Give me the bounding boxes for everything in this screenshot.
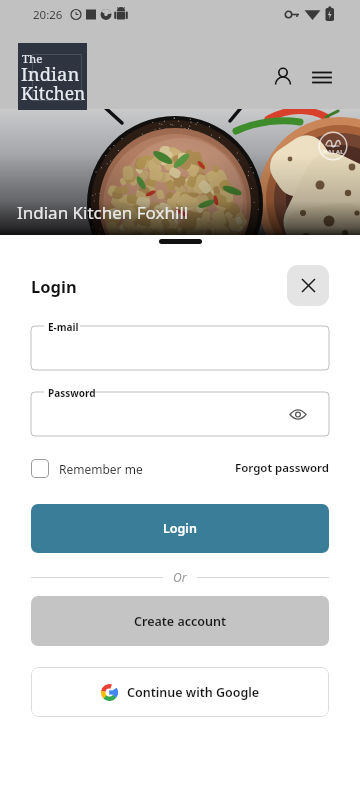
staticText: 20:26 [33, 7, 63, 23]
staticText: Remember me [59, 461, 143, 477]
button[interactable]: Show password [288, 404, 308, 424]
staticText: Login [163, 520, 197, 537]
button[interactable]: Continue with Google [31, 667, 329, 717]
staticText: The [22, 51, 43, 67]
button[interactable]: Menu [308, 63, 336, 91]
button[interactable]: Account [269, 63, 297, 91]
button[interactable]: Forgot password [196, 458, 329, 478]
button[interactable]: The Indian Kitchen logo [18, 43, 87, 110]
staticText: Login [31, 275, 77, 297]
staticText: E-mail [48, 320, 79, 334]
button[interactable]: Close [287, 265, 329, 306]
button[interactable]: Create account [31, 596, 329, 646]
staticText: Forgot password [235, 460, 329, 476]
staticText: Or [173, 569, 187, 585]
staticText: Password [48, 386, 96, 400]
button[interactable]: Remember me [31, 458, 143, 478]
button[interactable]: Login [31, 504, 329, 553]
staticText: HALAL [323, 148, 344, 155]
staticText: Continue with Google [127, 684, 260, 701]
staticText: Kitchen [21, 81, 86, 105]
staticText: Create account [134, 613, 227, 630]
staticText: Indian Kitchen Foxhill [17, 201, 189, 224]
staticText: Indian [21, 61, 80, 86]
